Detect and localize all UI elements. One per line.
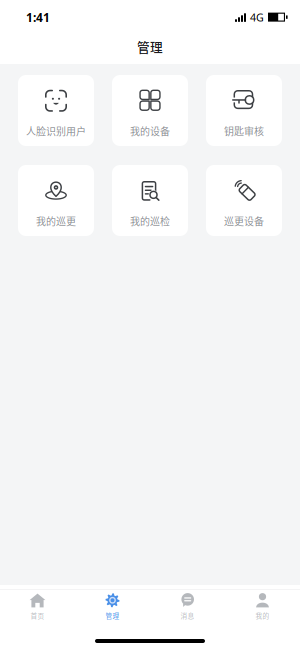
button[interactable]: 消息 [150, 595, 225, 627]
button[interactable]: 我的 [225, 595, 300, 627]
staticText: 4G [250, 10, 264, 24]
staticText: 我的巡更 [36, 214, 76, 228]
staticText: 钥匙审核 [224, 124, 264, 138]
staticText: 管理 [137, 37, 163, 56]
staticText: 我的设备 [130, 124, 170, 138]
button[interactable]: 我的巡检 [112, 165, 188, 236]
staticText: 我的 [255, 611, 269, 620]
button[interactable]: 我的巡更 [18, 165, 94, 236]
staticText: 人脸识别用户 [26, 124, 86, 138]
button[interactable]: 管理 [75, 595, 150, 627]
staticText: 我的巡检 [130, 214, 170, 228]
button[interactable]: 我的设备 [112, 75, 188, 146]
staticText: 1:41 [26, 9, 50, 25]
staticText: 巡更设备 [224, 214, 264, 228]
button[interactable]: 人脸识别用户 [18, 75, 94, 146]
button[interactable]: 钥匙审核 [206, 75, 282, 146]
button[interactable]: 巡更设备 [206, 165, 282, 236]
staticText: 管理 [105, 611, 119, 620]
staticText: 消息 [180, 611, 194, 620]
button[interactable]: 首页 [0, 595, 75, 627]
staticText: 首页 [30, 611, 44, 620]
